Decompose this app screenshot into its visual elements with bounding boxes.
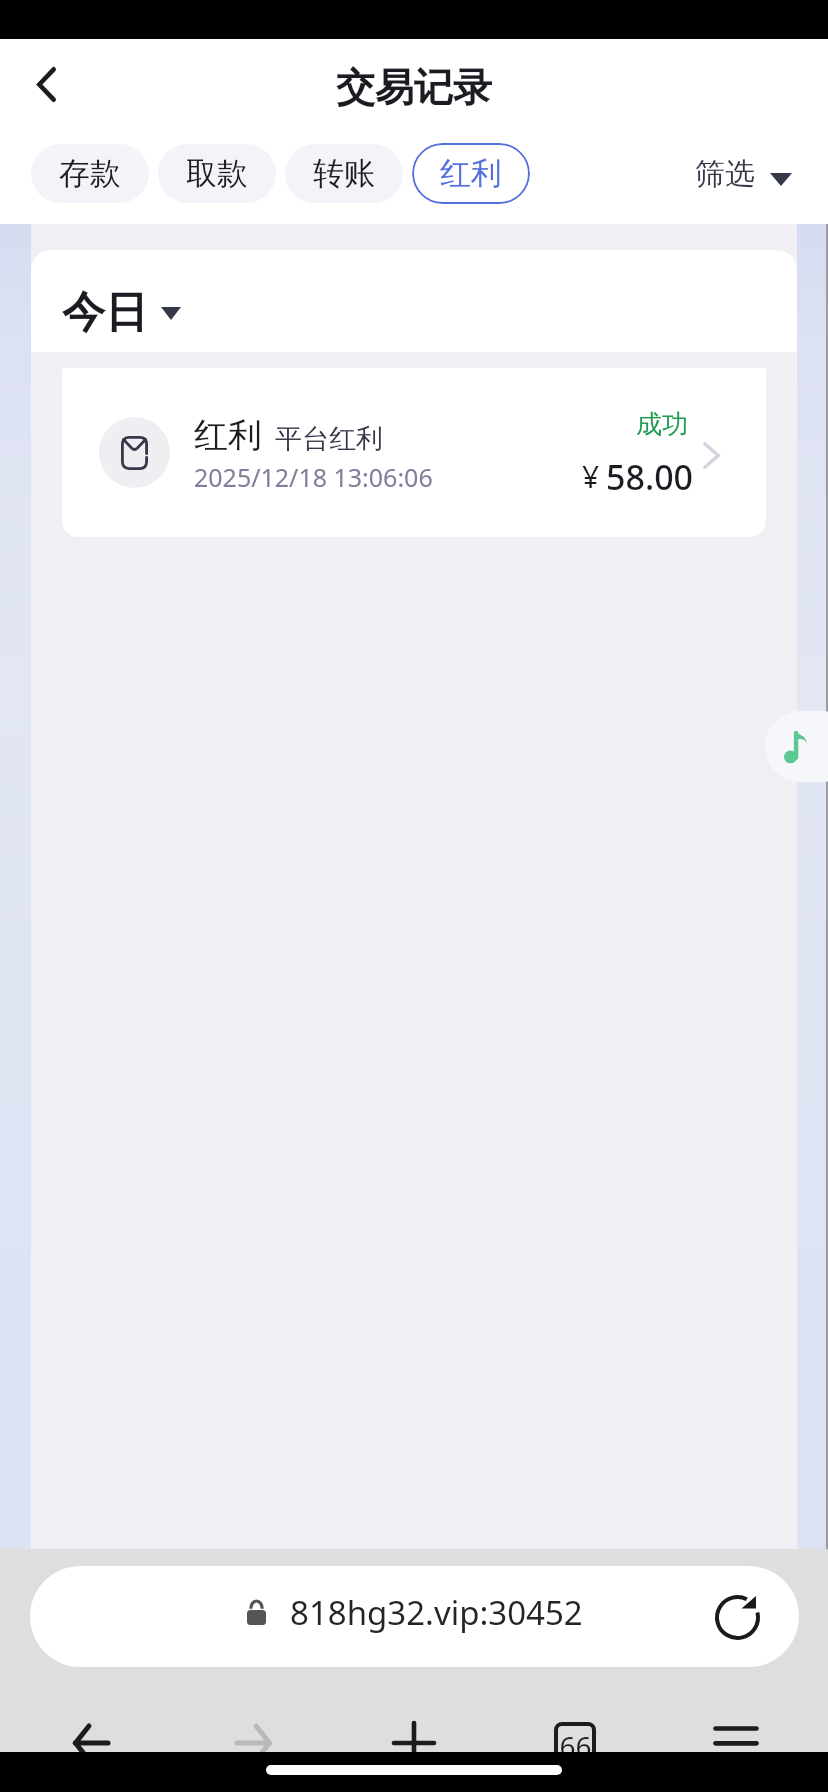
button[interactable]: Music xyxy=(765,711,828,782)
staticText: 红利 xyxy=(440,154,502,193)
button[interactable]: Menu xyxy=(655,1710,816,1780)
staticText: 今日 xyxy=(62,286,148,340)
button[interactable]: 818hg32.vip:30452 xyxy=(30,1566,799,1667)
staticText: 66 xyxy=(559,1727,592,1765)
staticText: 转账 xyxy=(313,154,375,193)
staticText: 平台红利 xyxy=(275,422,383,456)
staticText: 筛选 xyxy=(695,155,755,193)
button[interactable]: 转账 xyxy=(285,144,403,203)
staticText: 红利 xyxy=(194,414,262,457)
button[interactable]: Tabs xyxy=(494,1710,655,1780)
button[interactable]: 筛选 xyxy=(695,147,792,201)
button[interactable]: 今日 xyxy=(62,286,181,340)
button[interactable]: New tab xyxy=(333,1710,494,1780)
button[interactable]: Forward xyxy=(172,1710,333,1780)
staticText: 存款 xyxy=(59,154,121,193)
staticText: 成功 xyxy=(636,408,688,441)
staticText: 取款 xyxy=(186,154,248,193)
staticText: ¥ xyxy=(582,456,600,497)
button[interactable]: 红利 xyxy=(412,143,530,204)
button[interactable]: Back xyxy=(18,56,74,112)
staticText: 交易记录 xyxy=(336,63,492,109)
staticText: 58.00 xyxy=(606,454,694,500)
button[interactable]: Back xyxy=(12,1710,172,1780)
button[interactable]: Reload xyxy=(709,1589,765,1645)
button[interactable]: 取款 xyxy=(158,144,276,203)
button[interactable]: 红利 xyxy=(62,368,766,537)
staticText: 818hg32.vip:30452 xyxy=(290,1590,583,1635)
button[interactable]: 存款 xyxy=(31,144,149,203)
staticText: 2025/12/18 13:06:06 xyxy=(194,460,433,494)
